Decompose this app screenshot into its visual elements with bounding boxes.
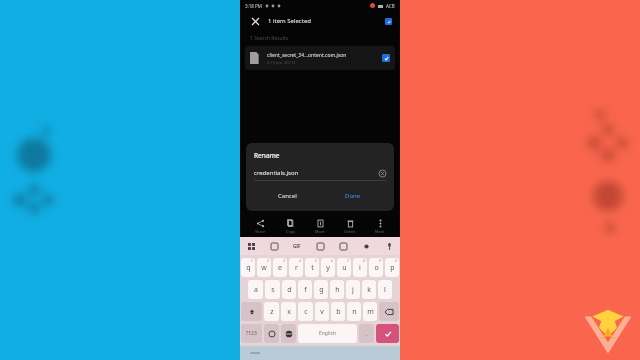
staticText: 1 Search Results [250, 35, 289, 42]
staticText: 1 [251, 259, 253, 263]
button[interactable]: w [257, 258, 271, 277]
button[interactable]: u [337, 258, 351, 277]
staticText: 3 [283, 259, 285, 263]
staticText: 4 [299, 259, 301, 263]
staticText: client_secret_34...ontent.com.json [267, 52, 347, 59]
staticText: Rename [254, 151, 280, 160]
staticText: r [295, 263, 298, 273]
button[interactable]: m [363, 302, 377, 321]
button[interactable]: English [298, 324, 357, 343]
staticText: Copy [286, 229, 295, 234]
button[interactable]: y [321, 258, 335, 277]
staticText: v [320, 307, 324, 317]
staticText: g [319, 285, 324, 295]
staticText: j [352, 285, 354, 295]
button[interactable]: Keyboard tool 3 [291, 240, 303, 252]
staticText: u [342, 263, 347, 273]
button[interactable]: Keyboard tool 1 [245, 240, 257, 252]
button[interactable]: Keyboard tool 4 [314, 240, 326, 252]
staticText: m [367, 307, 374, 317]
button[interactable]: Keyboard tool 7 [383, 240, 395, 252]
button[interactable]: z [264, 302, 279, 321]
staticText: 5 [315, 259, 317, 263]
staticText: o [374, 263, 379, 273]
button[interactable]: b [331, 302, 345, 321]
button[interactable]: n [347, 302, 361, 321]
button[interactable]: Key [281, 324, 296, 343]
staticText: 8 [363, 259, 365, 263]
staticText: ACB [386, 3, 395, 9]
button[interactable]: f [298, 280, 312, 299]
button[interactable]: r [289, 258, 303, 277]
staticText: 2:19 pm 407 B [267, 60, 295, 65]
staticText: f [304, 285, 307, 295]
staticText: More [375, 229, 385, 234]
button[interactable]: Share [246, 219, 274, 234]
button[interactable]: d [282, 280, 296, 299]
button[interactable]: Close selection [248, 14, 262, 28]
button[interactable]: Cancel [254, 189, 320, 203]
button[interactable]: ?123 [241, 324, 262, 343]
button[interactable]: c [298, 302, 313, 321]
staticText: 0 [395, 259, 397, 263]
staticText: 6 [331, 259, 333, 263]
staticText: 2 [267, 259, 269, 263]
button[interactable]: e [273, 258, 287, 277]
staticText: l [384, 285, 386, 295]
staticText: q [246, 263, 251, 273]
button[interactable]: client_secret_34...ontent.com.json [245, 46, 395, 70]
button[interactable]: More [366, 219, 394, 234]
button[interactable]: s [265, 280, 280, 299]
button[interactable]: Delete [336, 219, 364, 234]
staticText: 1 item Selected [268, 17, 311, 25]
staticText: Share [255, 229, 266, 234]
staticText: GIF [293, 243, 301, 249]
button[interactable]: Enter [376, 324, 399, 343]
button[interactable]: Done [320, 189, 386, 203]
staticText: English [319, 330, 337, 337]
button[interactable]: Move [306, 219, 334, 234]
staticText: 7 [347, 259, 349, 263]
staticText: k [367, 285, 371, 295]
button[interactable]: Select all [385, 18, 392, 25]
button[interactable]: j [346, 280, 360, 299]
staticText: . [366, 330, 368, 338]
button[interactable]: l [378, 280, 392, 299]
staticText: n [352, 307, 357, 317]
button[interactable]: x [281, 302, 296, 321]
button[interactable]: o [369, 258, 383, 277]
button[interactable]: Key [264, 324, 279, 343]
button[interactable]: Copy [276, 219, 304, 234]
staticText: z [270, 307, 274, 317]
staticText: t [311, 263, 314, 273]
staticText: Done [345, 192, 361, 200]
button[interactable]: i [353, 258, 367, 277]
staticText: d [287, 285, 292, 295]
button[interactable]: t [305, 258, 319, 277]
button[interactable]: Key [241, 302, 262, 321]
button[interactable]: Keyboard tool 5 [337, 240, 349, 252]
staticText: ?123 [246, 330, 257, 337]
staticText: credentials.json [254, 169, 378, 177]
button[interactable]: Period [359, 324, 374, 343]
button[interactable]: v [315, 302, 329, 321]
staticText: e [278, 263, 282, 273]
staticText: a [254, 285, 258, 295]
button[interactable]: a [248, 280, 263, 299]
staticText: b [336, 307, 341, 317]
staticText: 3:18 PM [245, 3, 262, 9]
button[interactable]: h [330, 280, 344, 299]
button[interactable]: Keyboard tool 6 [360, 240, 372, 252]
button[interactable]: k [362, 280, 376, 299]
staticText: w [261, 263, 267, 273]
staticText: Move [315, 229, 325, 234]
button[interactable]: Keyboard tool 2 [268, 240, 280, 252]
button[interactable]: q [241, 258, 255, 277]
staticText: y [326, 263, 330, 273]
button[interactable]: Key [379, 302, 399, 321]
button[interactable]: p [385, 258, 399, 277]
button[interactable]: Clear text [378, 169, 386, 177]
staticText: x [287, 307, 291, 317]
button[interactable]: g [314, 280, 328, 299]
staticText: Delete [344, 229, 356, 234]
